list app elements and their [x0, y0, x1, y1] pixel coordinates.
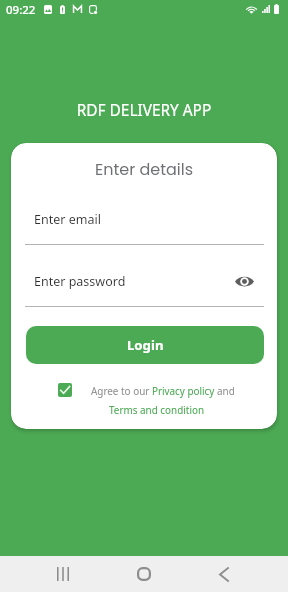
button[interactable]: Agree to our Privacy policy and	[91, 384, 235, 397]
button[interactable]: Agree to terms checkbox	[58, 383, 72, 397]
staticText: 09:22	[6, 2, 36, 18]
button[interactable]: Back	[204, 556, 244, 592]
button[interactable]: Home	[124, 556, 164, 592]
staticText: Enter password	[34, 273, 126, 290]
staticText: Enter details	[11, 158, 277, 180]
staticText: Login	[127, 336, 164, 354]
button[interactable]: Recent apps	[43, 556, 83, 592]
button[interactable]: Show password	[232, 270, 256, 292]
staticText: Enter email	[34, 211, 101, 228]
button[interactable]: Terms and condition	[109, 403, 205, 416]
button[interactable]: Login	[26, 326, 264, 364]
staticText: RDF DELIVERY APP	[0, 100, 288, 121]
